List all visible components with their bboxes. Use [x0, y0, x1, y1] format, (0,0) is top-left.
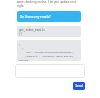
- button[interactable]: Send: [73, 82, 85, 90]
- button[interactable]: [ { "id": "8ef9d7f67b3a93ba101d5ed6", "s…: [17, 40, 81, 61]
- button[interactable]: [15, 64, 85, 78]
- button[interactable]: get_inbox_emails: [17, 26, 81, 37]
- button[interactable]: Do I have any emails?: [17, 11, 81, 22]
- staticText: {}: [19, 32, 23, 36]
- staticText: [ { "id": "8ef9d7f67b3a93ba101d5ed6", "s…: [19, 42, 81, 61]
- staticText: were checking on this. I let you update …: [17, 0, 77, 7]
- staticText: Send: [75, 84, 83, 88]
- staticText: get_inbox_emails: [19, 28, 45, 32]
- staticText: Do I have any emails?: [20, 15, 51, 19]
